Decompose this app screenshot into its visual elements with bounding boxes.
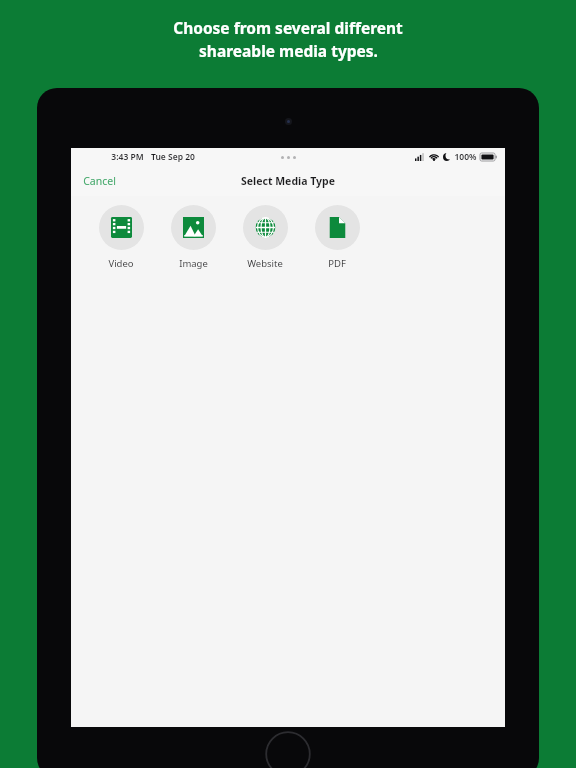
button[interactable]: PDF <box>301 203 373 272</box>
staticText: Image <box>179 257 208 270</box>
other: Image <box>171 205 216 250</box>
staticText: shareable media types. <box>199 40 378 61</box>
staticText: 3:43 PM <box>111 151 144 163</box>
other: Video <box>99 205 144 250</box>
staticText: Cancel <box>83 174 116 188</box>
staticText: Video <box>108 257 134 270</box>
other: PDF <box>315 205 360 250</box>
staticText: Choose from several different <box>173 17 403 38</box>
button[interactable]: Image <box>157 203 229 272</box>
staticText: Select Media Type <box>241 174 335 188</box>
button[interactable]: Cancel <box>71 169 128 193</box>
staticText: Website <box>247 257 283 270</box>
other: Website <box>243 205 288 250</box>
staticText: 100% <box>454 151 477 163</box>
staticText: Tue Sep 20 <box>151 151 195 163</box>
button[interactable]: Video <box>85 203 157 272</box>
button[interactable]: Website <box>229 203 301 272</box>
staticText: PDF <box>328 257 346 270</box>
